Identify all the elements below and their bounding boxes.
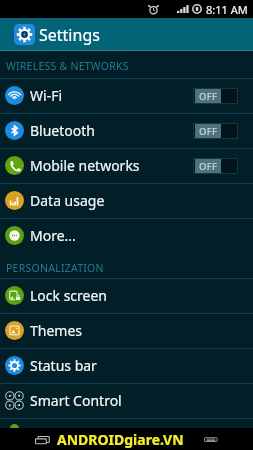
button[interactable]: Themes [0, 314, 253, 349]
button[interactable]: Menu [202, 430, 220, 448]
staticText: Status bar [30, 356, 97, 375]
staticText: Smart Control [30, 391, 122, 410]
button[interactable] [0, 419, 253, 428]
button[interactable]: Smart Control [0, 384, 253, 419]
staticText: Data usage [30, 191, 105, 210]
button[interactable]: OFF [193, 123, 238, 139]
button[interactable]: Status bar [0, 349, 253, 384]
button[interactable]: Wi-Fi [0, 79, 253, 114]
button[interactable]: Mobile networks [0, 149, 253, 184]
staticText: Bluetooth [30, 121, 95, 140]
button[interactable]: Bluetooth [0, 114, 253, 149]
staticText: Mobile networks [30, 156, 140, 175]
staticText: More... [30, 226, 76, 245]
staticText: WIRELESS & NETWORKS [6, 59, 129, 73]
button[interactable]: Settings [0, 18, 253, 51]
button[interactable]: OFF [193, 158, 238, 174]
staticText: OFF [199, 90, 218, 103]
staticText: 8:11 AM [206, 2, 248, 17]
staticText: OFF [199, 160, 218, 173]
staticText: Wi-Fi [30, 86, 63, 105]
staticText: Settings [39, 24, 100, 46]
staticText: PERSONALIZATION [6, 261, 104, 275]
staticText: Lock screen [30, 286, 108, 305]
staticText: OFF [199, 125, 218, 138]
button[interactable]: More... [0, 219, 253, 254]
button[interactable]: Lock screen [0, 279, 253, 314]
button[interactable]: OFF [193, 88, 238, 104]
button[interactable]: Data usage [0, 184, 253, 219]
staticText: ANDROIDgiare.VN [57, 430, 184, 449]
button[interactable]: Recents [34, 431, 53, 447]
staticText: Themes [30, 321, 83, 340]
